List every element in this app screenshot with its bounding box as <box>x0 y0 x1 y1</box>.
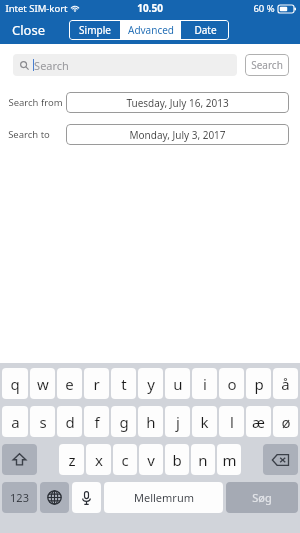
staticText: Simple <box>79 23 111 37</box>
staticText: Advanced <box>128 23 174 37</box>
staticText: 123 <box>10 490 29 505</box>
button[interactable]: Shift <box>2 444 37 475</box>
button[interactable]: Close <box>8 18 49 42</box>
staticText: 60 % <box>253 2 275 15</box>
button[interactable]: e <box>57 368 82 399</box>
staticText: y <box>147 374 155 394</box>
staticText: x <box>95 450 103 470</box>
staticText: Tuesday, July 16, 2013 <box>126 96 229 110</box>
button[interactable]: Dictate <box>72 482 101 513</box>
staticText: Search to <box>8 128 50 141</box>
staticText: c <box>121 450 129 470</box>
button[interactable]: Advanced <box>121 20 180 40</box>
staticText: Date <box>194 23 217 37</box>
button[interactable]: Tuesday, July 16, 2013 <box>66 92 289 113</box>
staticText: i <box>203 374 207 394</box>
staticText: Søg <box>252 490 272 505</box>
staticText: Intet SIM-kort <box>5 2 68 15</box>
button[interactable]: d <box>57 406 82 437</box>
staticText: Search from <box>8 96 63 109</box>
button[interactable]: Date <box>181 20 229 40</box>
staticText: n <box>198 450 208 470</box>
staticText: k <box>200 412 209 432</box>
button[interactable]: o <box>219 368 244 399</box>
button[interactable]: k <box>192 406 217 437</box>
button[interactable]: m <box>217 444 241 475</box>
button[interactable]: x <box>86 444 111 475</box>
button[interactable]: Search <box>13 54 237 76</box>
button[interactable]: æ <box>246 406 271 437</box>
staticText: b <box>172 450 182 470</box>
button[interactable]: u <box>165 368 190 399</box>
staticText: ø <box>281 412 291 432</box>
button[interactable]: å <box>273 368 298 399</box>
staticText: å <box>281 374 290 394</box>
staticText: v <box>147 450 155 470</box>
button[interactable]: Search <box>245 54 289 76</box>
staticText: Search <box>251 58 283 72</box>
button[interactable]: r <box>84 368 109 399</box>
staticText: Search <box>34 58 69 73</box>
staticText: z <box>68 450 76 470</box>
staticText: p <box>254 374 264 394</box>
button[interactable]: i <box>192 368 217 399</box>
staticText: r <box>93 374 100 394</box>
staticText: e <box>65 374 74 394</box>
staticText: 10.50 <box>137 1 163 15</box>
button[interactable]: Søg <box>226 482 298 513</box>
staticText: s <box>39 412 47 432</box>
button[interactable]: g <box>111 406 136 437</box>
staticText: Mellemrum <box>134 490 194 505</box>
staticText: o <box>227 374 237 394</box>
staticText: t <box>121 374 127 394</box>
button[interactable]: w <box>30 368 55 399</box>
button[interactable]: 123 <box>2 482 37 513</box>
staticText: w <box>37 374 49 394</box>
button[interactable]: Simple <box>69 20 120 40</box>
button[interactable]: y <box>138 368 163 399</box>
staticText: d <box>65 412 75 432</box>
staticText: f <box>94 412 100 432</box>
staticText: m <box>222 450 237 470</box>
button[interactable]: h <box>138 406 163 437</box>
button[interactable]: a <box>2 406 28 437</box>
button[interactable]: q <box>2 368 28 399</box>
staticText: h <box>146 412 156 432</box>
staticText: q <box>10 374 20 394</box>
staticText: Close <box>12 21 45 39</box>
button[interactable]: Change keyboard <box>40 482 69 513</box>
button[interactable]: b <box>165 444 189 475</box>
button[interactable]: Backspace <box>263 444 298 475</box>
button[interactable]: z <box>59 444 84 475</box>
button[interactable]: ø <box>273 406 298 437</box>
button[interactable]: Mellemrum <box>104 482 223 513</box>
button[interactable]: n <box>191 444 215 475</box>
button[interactable]: l <box>219 406 244 437</box>
staticText: g <box>119 412 129 432</box>
button[interactable]: c <box>113 444 137 475</box>
staticText: j <box>176 412 180 432</box>
staticText: a <box>11 412 20 432</box>
button[interactable]: Monday, July 3, 2017 <box>66 124 289 145</box>
button[interactable]: j <box>165 406 190 437</box>
staticText: u <box>173 374 183 394</box>
button[interactable]: f <box>84 406 109 437</box>
button[interactable]: v <box>139 444 163 475</box>
button[interactable]: p <box>246 368 271 399</box>
staticText: l <box>230 412 234 432</box>
staticText: æ <box>252 412 265 432</box>
button[interactable]: s <box>30 406 55 437</box>
staticText: Monday, July 3, 2017 <box>129 128 226 142</box>
button[interactable]: t <box>111 368 136 399</box>
